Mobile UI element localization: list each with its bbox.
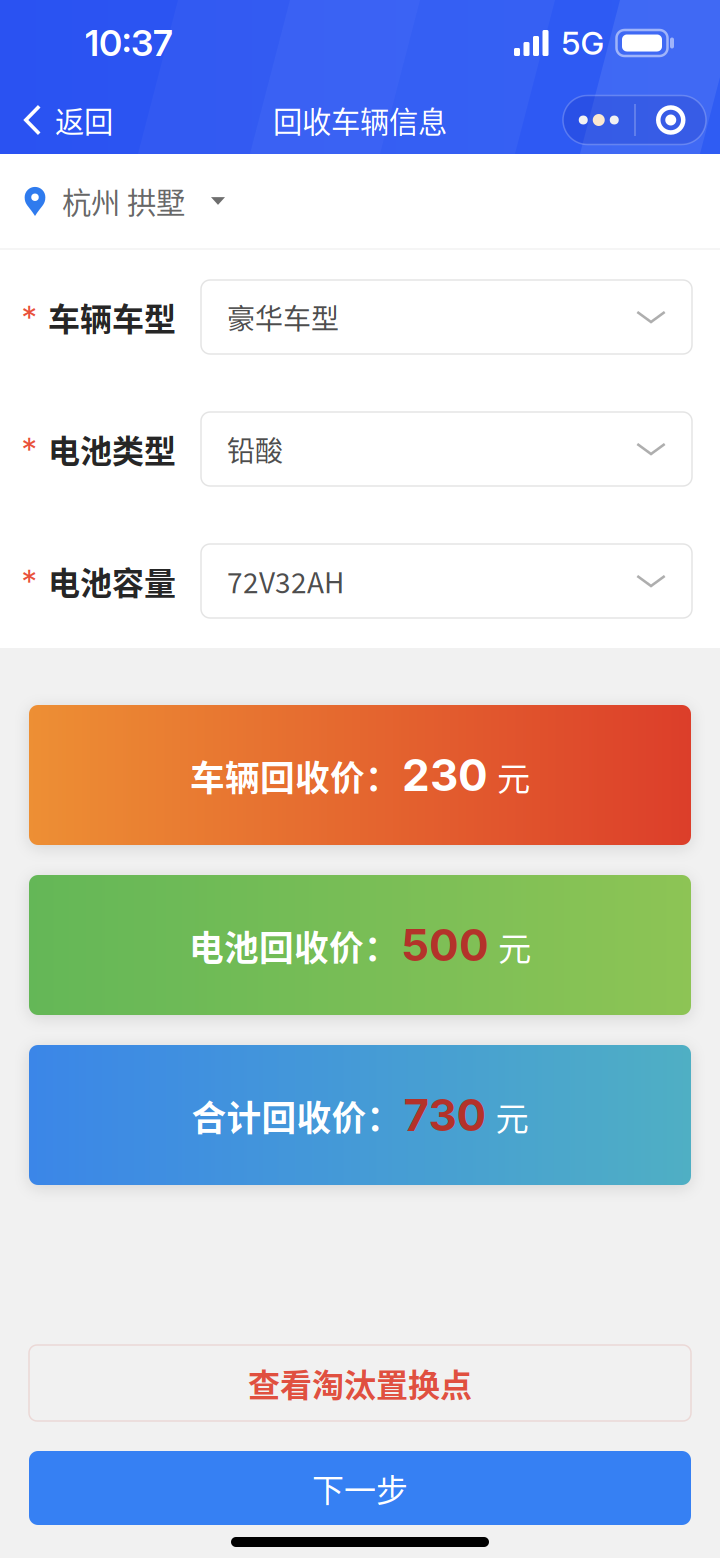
staticText: 豪华车型 bbox=[227, 297, 339, 337]
staticText: * bbox=[21, 430, 36, 468]
button[interactable]: 返回 bbox=[0, 86, 133, 154]
staticText: 合计回收价： bbox=[191, 1091, 401, 1141]
staticText: 电池类型 bbox=[48, 426, 176, 472]
staticText: 元 bbox=[490, 752, 530, 801]
staticText: 回收车辆信息 bbox=[273, 99, 447, 141]
staticText: 返回 bbox=[55, 99, 113, 141]
staticText: * bbox=[21, 298, 36, 336]
staticText: 5G bbox=[561, 24, 604, 62]
staticText: 车辆车型 bbox=[48, 294, 176, 340]
staticText: 下一步 bbox=[312, 1465, 408, 1511]
staticText: 电池容量 bbox=[48, 558, 176, 604]
staticText: 铅酸 bbox=[227, 429, 283, 469]
staticText: 500 bbox=[401, 918, 489, 972]
staticText: 车辆回收价： bbox=[190, 751, 400, 801]
staticText: 230 bbox=[402, 748, 488, 802]
staticText: 730 bbox=[403, 1088, 486, 1142]
staticText: * bbox=[21, 562, 36, 600]
button[interactable]: 查看淘汰置换点 bbox=[29, 1345, 691, 1421]
button[interactable]: 铅酸 bbox=[201, 412, 692, 486]
button[interactable]: 杭州 拱墅 bbox=[0, 154, 720, 248]
staticText: 元 bbox=[491, 922, 531, 971]
button[interactable]: 下一步 bbox=[29, 1451, 691, 1525]
staticText: 10:37 bbox=[85, 21, 173, 65]
button[interactable]: 72V32AH bbox=[201, 544, 692, 618]
staticText: 查看淘汰置换点 bbox=[248, 1360, 472, 1406]
staticText: 杭州 拱墅 bbox=[62, 180, 185, 222]
staticText: 72V32AH bbox=[227, 561, 344, 601]
button[interactable]: More options and close mini program bbox=[563, 95, 706, 144]
button[interactable]: 豪华车型 bbox=[201, 280, 692, 354]
staticText: 元 bbox=[488, 1092, 528, 1141]
staticText: 电池回收价： bbox=[189, 921, 399, 971]
